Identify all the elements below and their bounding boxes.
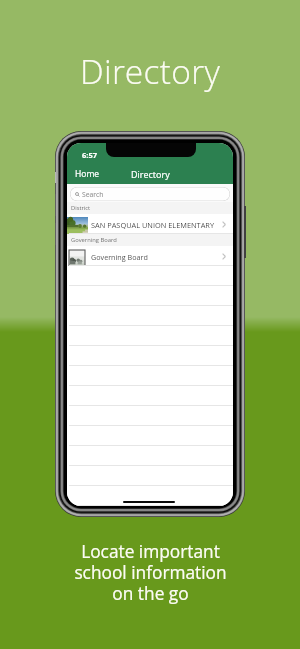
staticText: Directory [80,48,221,94]
staticText: Directory [131,168,170,180]
staticText: Locate important school information on t… [74,540,227,605]
staticText: District [71,204,91,212]
button[interactable]: Governing Board [67,246,233,266]
staticText: Governing Board [91,252,148,262]
staticText: Governing Board [71,236,117,244]
staticText: Search [82,190,104,199]
button[interactable]: Home [71,166,104,182]
staticText: 6:57 [82,150,98,160]
staticText: Home [75,168,100,180]
button[interactable]: Search [70,187,230,201]
staticText: SAN PASQUAL UNION ELEMENTARY [91,220,215,230]
button[interactable]: SAN PASQUAL UNION ELEMENTARY [67,214,233,234]
